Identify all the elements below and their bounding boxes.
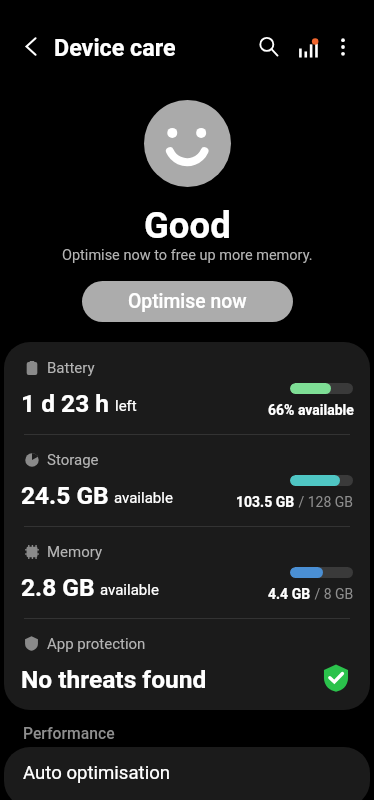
staticText: Optimise now to free up more memory.	[62, 247, 313, 264]
staticText: 103.5 GB	[236, 494, 295, 510]
staticText: Performance	[23, 724, 115, 742]
staticText: 2.8 GB	[21, 573, 95, 602]
button[interactable]: Memory	[4, 526, 370, 618]
button[interactable]: Optimise now	[82, 281, 293, 322]
staticText: available	[114, 489, 173, 507]
staticText: Device care	[54, 34, 176, 61]
staticText: 4.4 GB	[268, 586, 311, 602]
button[interactable]: Storage	[4, 434, 370, 526]
button[interactable]: Search	[246, 24, 291, 69]
button[interactable]: Usage statistics	[285, 26, 330, 71]
staticText: Storage	[47, 451, 99, 469]
staticText: 1 d 23 h	[21, 389, 110, 418]
staticText: / 128 GB	[295, 494, 354, 510]
button[interactable]: Auto optimisation	[4, 747, 370, 800]
staticText: Battery	[47, 359, 95, 377]
staticText: No threats found	[21, 665, 207, 694]
button[interactable]: App protection	[4, 618, 370, 710]
staticText: left	[115, 397, 137, 415]
staticText: App protection	[47, 635, 146, 653]
staticText: Memory	[47, 543, 103, 561]
staticText: 66% available	[268, 402, 354, 418]
button[interactable]: More options	[320, 24, 365, 69]
button[interactable]: Back	[8, 24, 53, 69]
staticText: Optimise now	[128, 290, 247, 313]
staticText: Auto optimisation	[23, 762, 171, 784]
staticText: Good	[144, 204, 231, 247]
button[interactable]: Battery	[4, 342, 370, 434]
staticText: 24.5 GB	[21, 481, 109, 510]
staticText: available	[100, 581, 159, 599]
staticText: / 8 GB	[311, 586, 354, 602]
